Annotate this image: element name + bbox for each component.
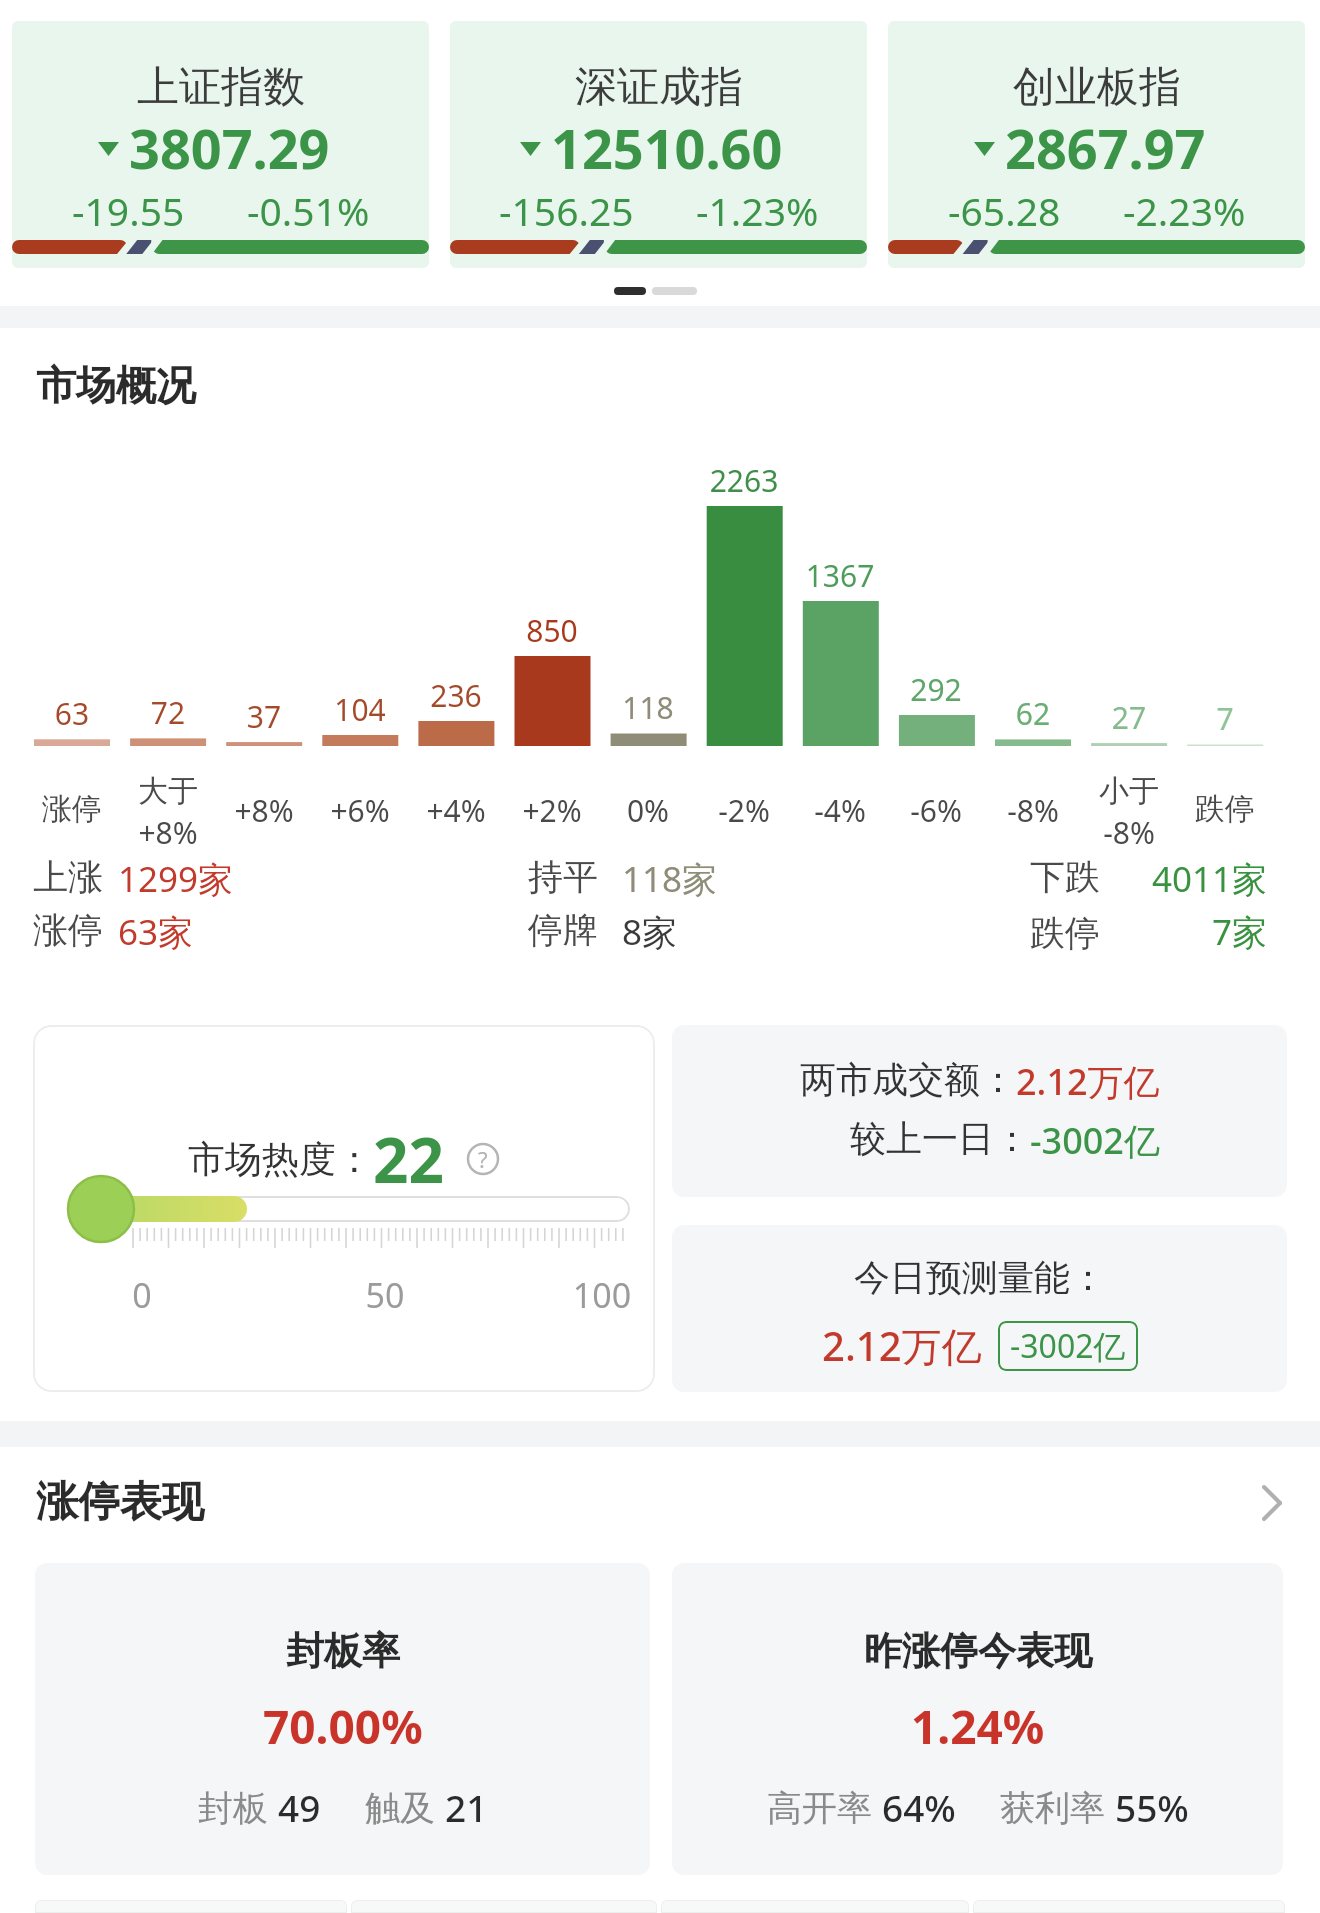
staticText: 停牌 <box>528 908 598 952</box>
staticText: -4% <box>780 790 900 831</box>
staticText: -8% <box>973 790 1093 831</box>
staticText: 236 <box>396 675 516 716</box>
button[interactable]: 涨停表现 <box>36 1476 1284 1529</box>
staticText: 49 <box>278 1782 321 1832</box>
staticText: 62 <box>973 693 1093 734</box>
staticText: 8家 <box>622 908 678 956</box>
staticText: 118 <box>588 687 708 728</box>
staticText: -2.23% <box>1123 184 1246 237</box>
staticText: 22 <box>373 1117 444 1201</box>
staticText: +2% <box>492 790 612 831</box>
button[interactable]: 昨涨停今表现 <box>672 1563 1283 1875</box>
button[interactable]: 深证成指 <box>450 21 867 268</box>
staticText: 1.24% <box>911 1695 1045 1758</box>
staticText: 70.00% <box>263 1695 423 1758</box>
staticText: 7 <box>1165 698 1285 739</box>
staticText: 64% <box>882 1782 956 1832</box>
staticText: -3002亿 <box>1030 1116 1160 1165</box>
staticText: 2.12万亿 <box>822 1318 982 1373</box>
staticText: -3002亿 <box>1010 1324 1126 1368</box>
staticText: 72 <box>108 692 228 733</box>
staticText: 0 <box>108 1272 176 1318</box>
staticText: -1.23% <box>696 184 819 237</box>
staticText: 12510.60 <box>551 111 783 185</box>
button[interactable]: 今日预测量能： <box>672 1225 1287 1392</box>
staticText: 市场概况 <box>36 360 196 410</box>
staticText: -2% <box>684 790 804 831</box>
staticText: 封板 <box>198 1783 278 1831</box>
staticText: 850 <box>492 610 612 651</box>
button[interactable]: 创业板指 <box>888 21 1305 268</box>
staticText: 21 <box>445 1782 488 1832</box>
staticText: 跌停 <box>1165 790 1285 828</box>
staticText: 上涨 <box>33 855 103 899</box>
staticText: -6% <box>876 790 996 831</box>
staticText: 创业板指 <box>1013 61 1181 114</box>
staticText: 下跌 <box>1030 855 1100 899</box>
staticText: 2263 <box>684 460 804 501</box>
staticText: 跌停 <box>1030 911 1100 955</box>
staticText: 292 <box>876 669 996 710</box>
staticText: 7家 <box>1060 908 1267 956</box>
staticText: 0% <box>588 790 708 831</box>
staticText: 涨停 <box>33 908 103 952</box>
staticText: 涨停表现 <box>36 1476 204 1529</box>
staticText: 2867.97 <box>1005 111 1206 185</box>
staticText: 持平 <box>528 855 598 899</box>
staticText: +6% <box>300 790 420 831</box>
staticText: 今日预测量能： <box>854 1255 1106 1300</box>
staticText: 上证指数 <box>137 61 305 114</box>
button[interactable]: 上证指数 <box>12 21 429 268</box>
staticText: 小于 <box>1069 772 1189 810</box>
button[interactable]: 封板率 <box>35 1563 650 1875</box>
staticText: -0.51% <box>247 184 370 237</box>
staticText: 4011家 <box>1060 855 1267 903</box>
staticText: 市场热度： <box>188 1136 373 1183</box>
staticText: +4% <box>396 790 516 831</box>
staticText: +8% <box>204 790 324 831</box>
staticText: ? <box>478 1144 488 1174</box>
staticText: 27 <box>1069 697 1189 738</box>
staticText: 104 <box>300 689 420 730</box>
staticText: 63 <box>12 693 132 734</box>
staticText: 深证成指 <box>575 61 743 114</box>
staticText: 3807.29 <box>129 111 330 185</box>
staticText: -19.55 <box>72 184 185 237</box>
staticText: 触及 <box>365 1783 445 1831</box>
staticText: 昨涨停今表现 <box>864 1627 1092 1675</box>
staticText: 118家 <box>622 855 718 903</box>
staticText: -156.25 <box>499 184 634 237</box>
staticText: -65.28 <box>948 184 1061 237</box>
staticText: 55% <box>1115 1782 1189 1832</box>
staticText: 63家 <box>118 908 194 956</box>
staticText: 封板率 <box>286 1627 400 1675</box>
staticText: 50 <box>351 1272 419 1318</box>
staticText: 37 <box>204 696 324 737</box>
staticText: 高开率 <box>767 1783 882 1831</box>
staticText: 1367 <box>780 555 900 596</box>
staticText: 大于 <box>108 772 228 810</box>
staticText: +8% <box>108 812 228 853</box>
staticText: 1299家 <box>118 855 234 903</box>
staticText: 较上一日： <box>850 1116 1030 1161</box>
staticText: 获利率 <box>1000 1783 1115 1831</box>
button[interactable]: 两市成交额： <box>672 1025 1287 1197</box>
staticText: 100 <box>568 1272 636 1318</box>
staticText: -8% <box>1069 812 1189 853</box>
staticText: 2.12万亿 <box>1016 1057 1160 1106</box>
staticText: 两市成交额： <box>800 1057 1016 1102</box>
staticText: 涨停 <box>12 790 132 828</box>
button[interactable]: 市场热度： <box>33 1025 655 1392</box>
